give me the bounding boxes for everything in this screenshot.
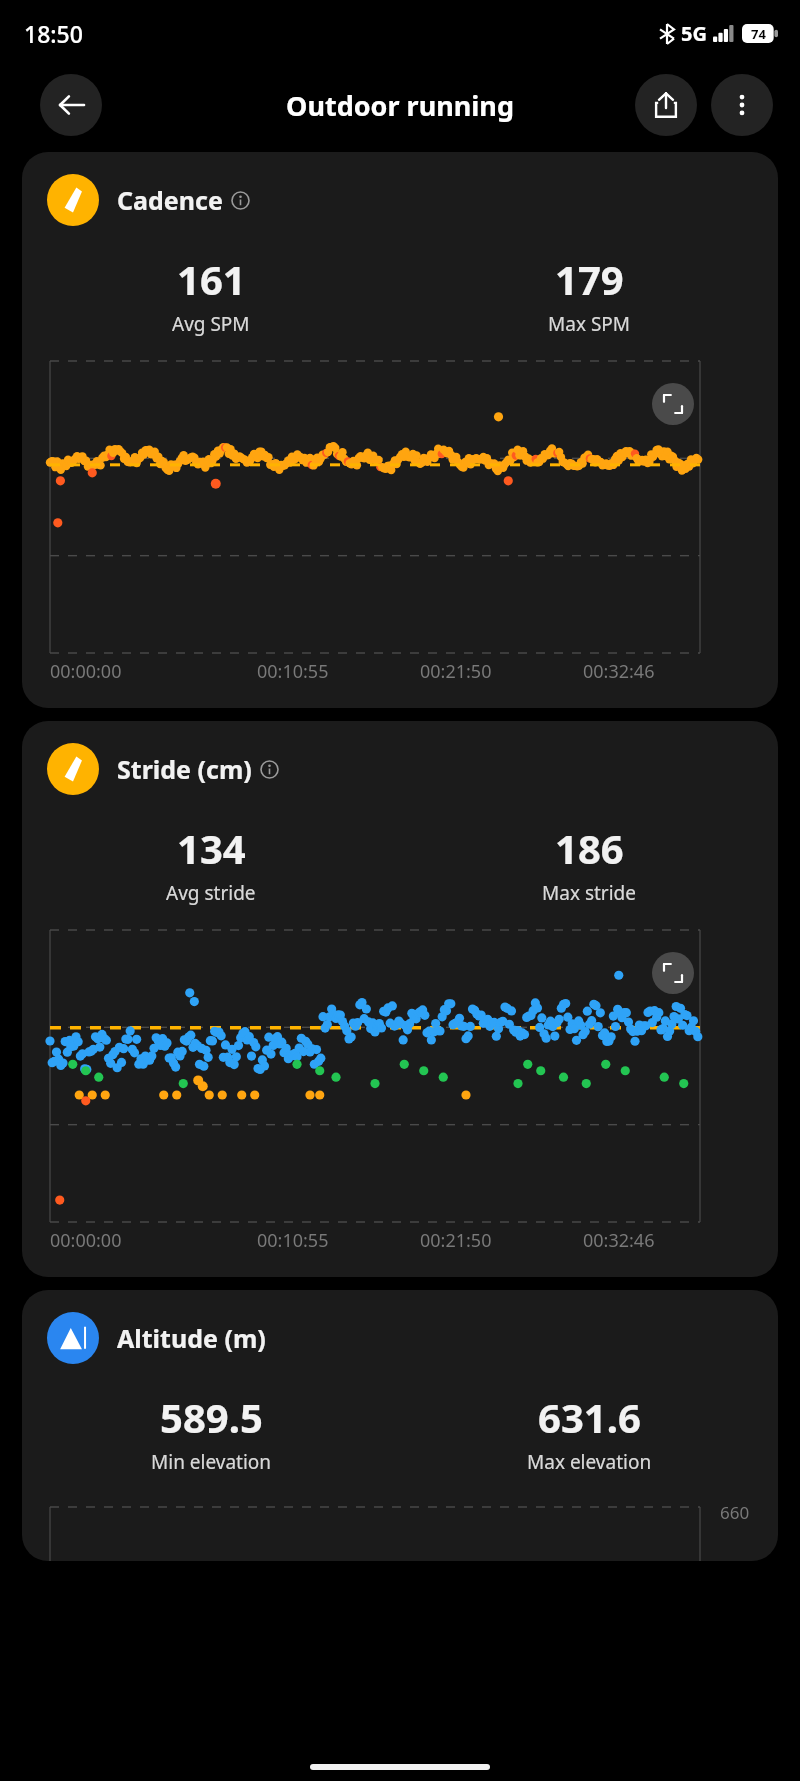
staticText: 00:21:50	[420, 1228, 492, 1253]
staticText: 161	[177, 252, 246, 306]
staticText: Outdoor running	[286, 87, 514, 124]
staticText: Max SPM	[548, 311, 631, 337]
button[interactable]: Altitude (m)	[47, 1312, 778, 1364]
staticText: Avg SPM	[172, 311, 250, 337]
staticText: 00:32:46	[583, 1228, 655, 1253]
staticText: 00:00:00	[50, 1228, 122, 1253]
staticText: 00:00:00	[50, 659, 122, 684]
button[interactable]: Altitude (m)	[22, 1290, 778, 1561]
staticText: 631.6	[538, 1390, 641, 1444]
staticText: Avg stride	[166, 880, 256, 906]
button[interactable]: Expand chart	[652, 383, 694, 425]
staticText: 00:32:46	[583, 659, 655, 684]
staticText: 5G	[681, 20, 707, 47]
staticText: 589.5	[160, 1390, 263, 1444]
staticText: Altitude (m)	[117, 1321, 266, 1355]
staticText: 134	[177, 821, 246, 875]
staticText: 179	[555, 252, 624, 306]
button[interactable]: Cadence	[22, 152, 778, 708]
staticText: 00:10:55	[257, 659, 329, 684]
staticText: 74	[751, 25, 766, 43]
staticText: 660	[720, 1501, 750, 1524]
staticText: Stride (cm)	[117, 752, 252, 786]
button[interactable]: Cadence	[47, 174, 778, 226]
button[interactable]: Stride (cm)	[22, 721, 778, 1277]
staticText: Min elevation	[151, 1449, 272, 1475]
staticText: 186	[555, 821, 624, 875]
staticText: Max stride	[542, 880, 636, 906]
staticText: 00:21:50	[420, 659, 492, 684]
button[interactable]: Back	[40, 74, 102, 136]
button[interactable]: Stride (cm)	[47, 743, 778, 795]
button[interactable]: Expand chart	[652, 952, 694, 994]
staticText: 00:10:55	[257, 1228, 329, 1253]
staticText: 18:50	[24, 18, 83, 49]
button[interactable]: Share	[635, 74, 697, 136]
button[interactable]: More options	[711, 74, 773, 136]
staticText: Max elevation	[527, 1449, 652, 1475]
staticText: Cadence	[117, 183, 223, 217]
